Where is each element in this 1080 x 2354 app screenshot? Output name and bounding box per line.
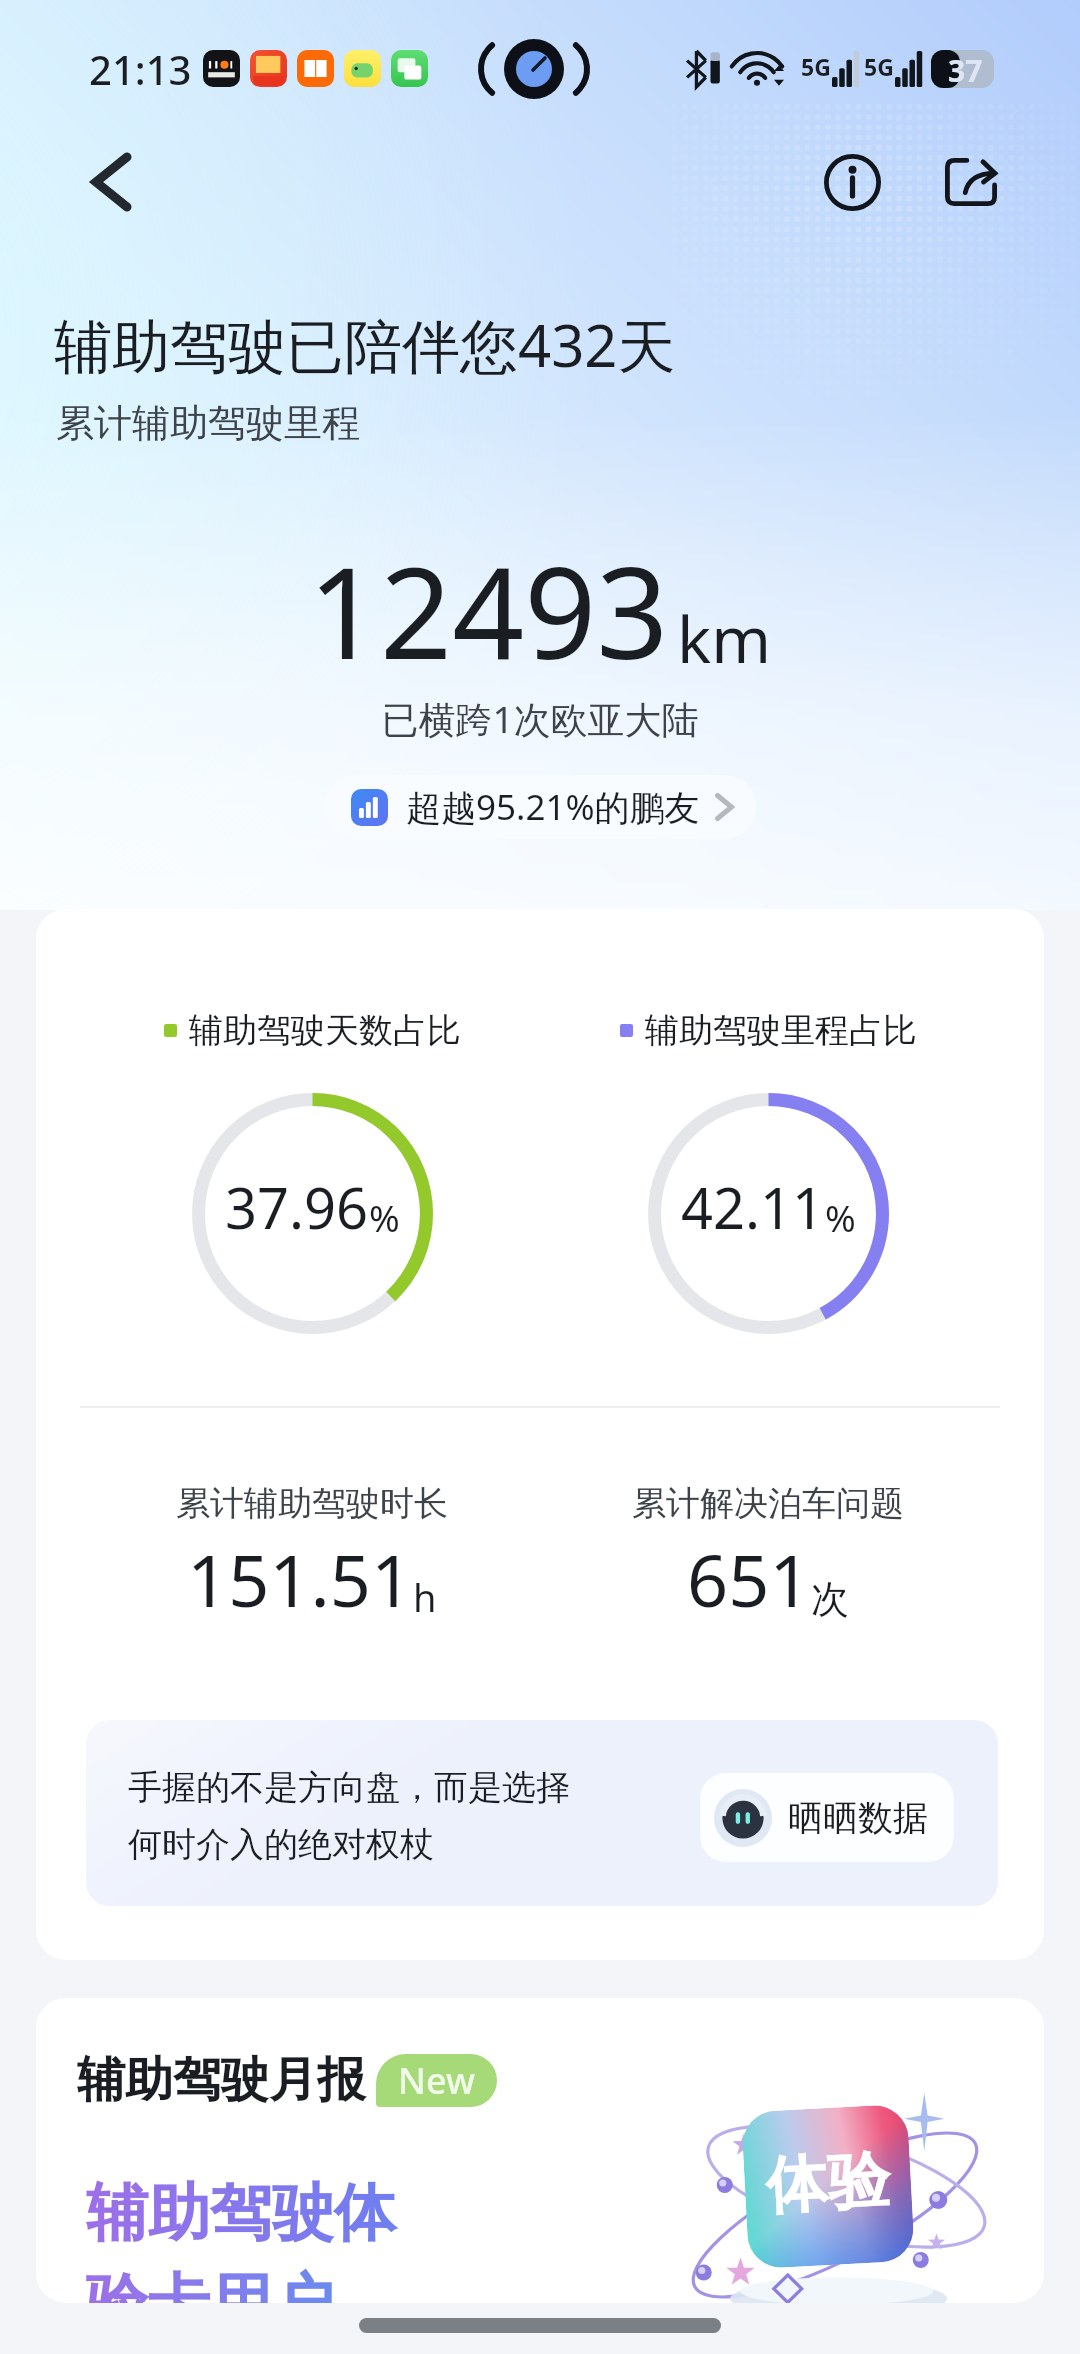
staticText: 辅助驾驶天数占比 bbox=[189, 1009, 461, 1052]
staticText: 辅助驾驶里程占比 bbox=[645, 1009, 917, 1052]
staticText: h bbox=[413, 1571, 437, 1623]
staticText: 5G bbox=[801, 51, 831, 82]
staticText: 何时介入的绝对权杖 bbox=[128, 1823, 434, 1866]
staticText: 累计辅助驾驶里程 bbox=[56, 399, 360, 447]
button[interactable]: 晒晒数据 bbox=[700, 1773, 954, 1862]
staticText: 辅助驾驶体 bbox=[86, 2174, 396, 2252]
staticText: 37.96 bbox=[225, 1169, 369, 1245]
staticText: 累计解决泊车问题 bbox=[632, 1482, 904, 1525]
staticText: 辅助驾驶月报 bbox=[77, 2050, 365, 2110]
staticText: 151.51 bbox=[187, 1530, 413, 1628]
staticText: 晒晒数据 bbox=[788, 1796, 928, 1840]
staticText: 12493 bbox=[308, 524, 669, 696]
staticText: 体验 bbox=[764, 2141, 892, 2225]
staticText: 验卡用户 bbox=[86, 2264, 334, 2303]
staticText: 辅助驾驶已陪伴您432天 bbox=[54, 305, 676, 384]
button[interactable]: 辅助驾驶月报 bbox=[36, 1998, 1044, 2303]
staticText: 累计辅助驾驶时长 bbox=[176, 1482, 448, 1525]
staticText: 21:13 bbox=[89, 42, 192, 96]
staticText: km bbox=[677, 595, 772, 682]
staticText: 次 bbox=[811, 1575, 849, 1623]
button[interactable]: Back bbox=[68, 139, 154, 225]
staticText: % bbox=[825, 1192, 856, 1242]
staticText: 已横跨1次欧亚大陆 bbox=[0, 693, 1080, 744]
button[interactable]: 超越95.21%的鹏友 bbox=[325, 775, 756, 839]
staticText: 37 bbox=[948, 50, 983, 88]
button[interactable]: Info bbox=[813, 143, 891, 221]
staticText: 超越95.21%的鹏友 bbox=[406, 783, 700, 831]
staticText: 5G bbox=[864, 51, 894, 82]
button[interactable]: Share bbox=[932, 143, 1010, 221]
staticText: 42.11 bbox=[681, 1169, 825, 1245]
staticText: 手握的不是方向盘，而是选择 bbox=[128, 1766, 570, 1809]
staticText: % bbox=[369, 1192, 400, 1242]
staticText: New bbox=[398, 2056, 475, 2105]
staticText: 651 bbox=[687, 1530, 811, 1628]
